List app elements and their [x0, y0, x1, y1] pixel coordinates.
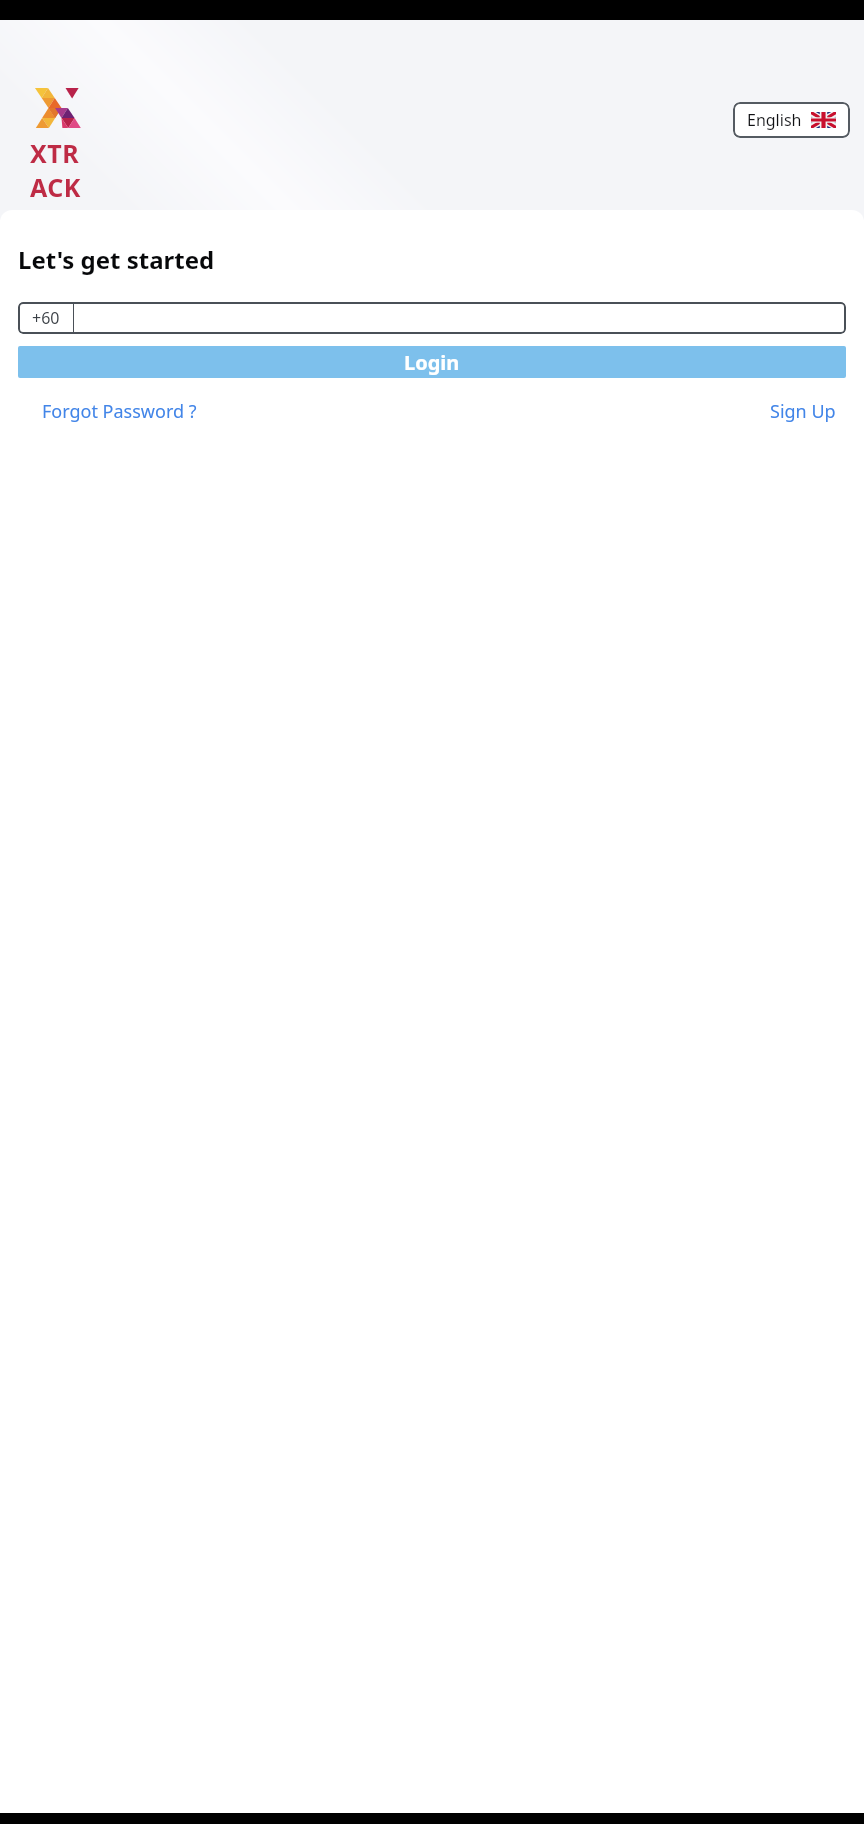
staticText: Login [404, 349, 460, 376]
button[interactable] [74, 302, 846, 334]
button[interactable]: English [733, 102, 850, 138]
staticText: Forgot Password ? [42, 399, 197, 424]
staticText: +60 [32, 307, 60, 329]
button[interactable]: +60 [18, 302, 73, 334]
staticText: XTRACK [30, 136, 96, 204]
button[interactable]: Login [18, 346, 846, 378]
staticText: English [747, 109, 802, 131]
button[interactable]: Forgot Password ? [18, 395, 221, 428]
staticText: Sign Up [770, 399, 836, 424]
staticText: Let's get started [18, 243, 215, 276]
button[interactable]: Sign Up [760, 395, 846, 428]
